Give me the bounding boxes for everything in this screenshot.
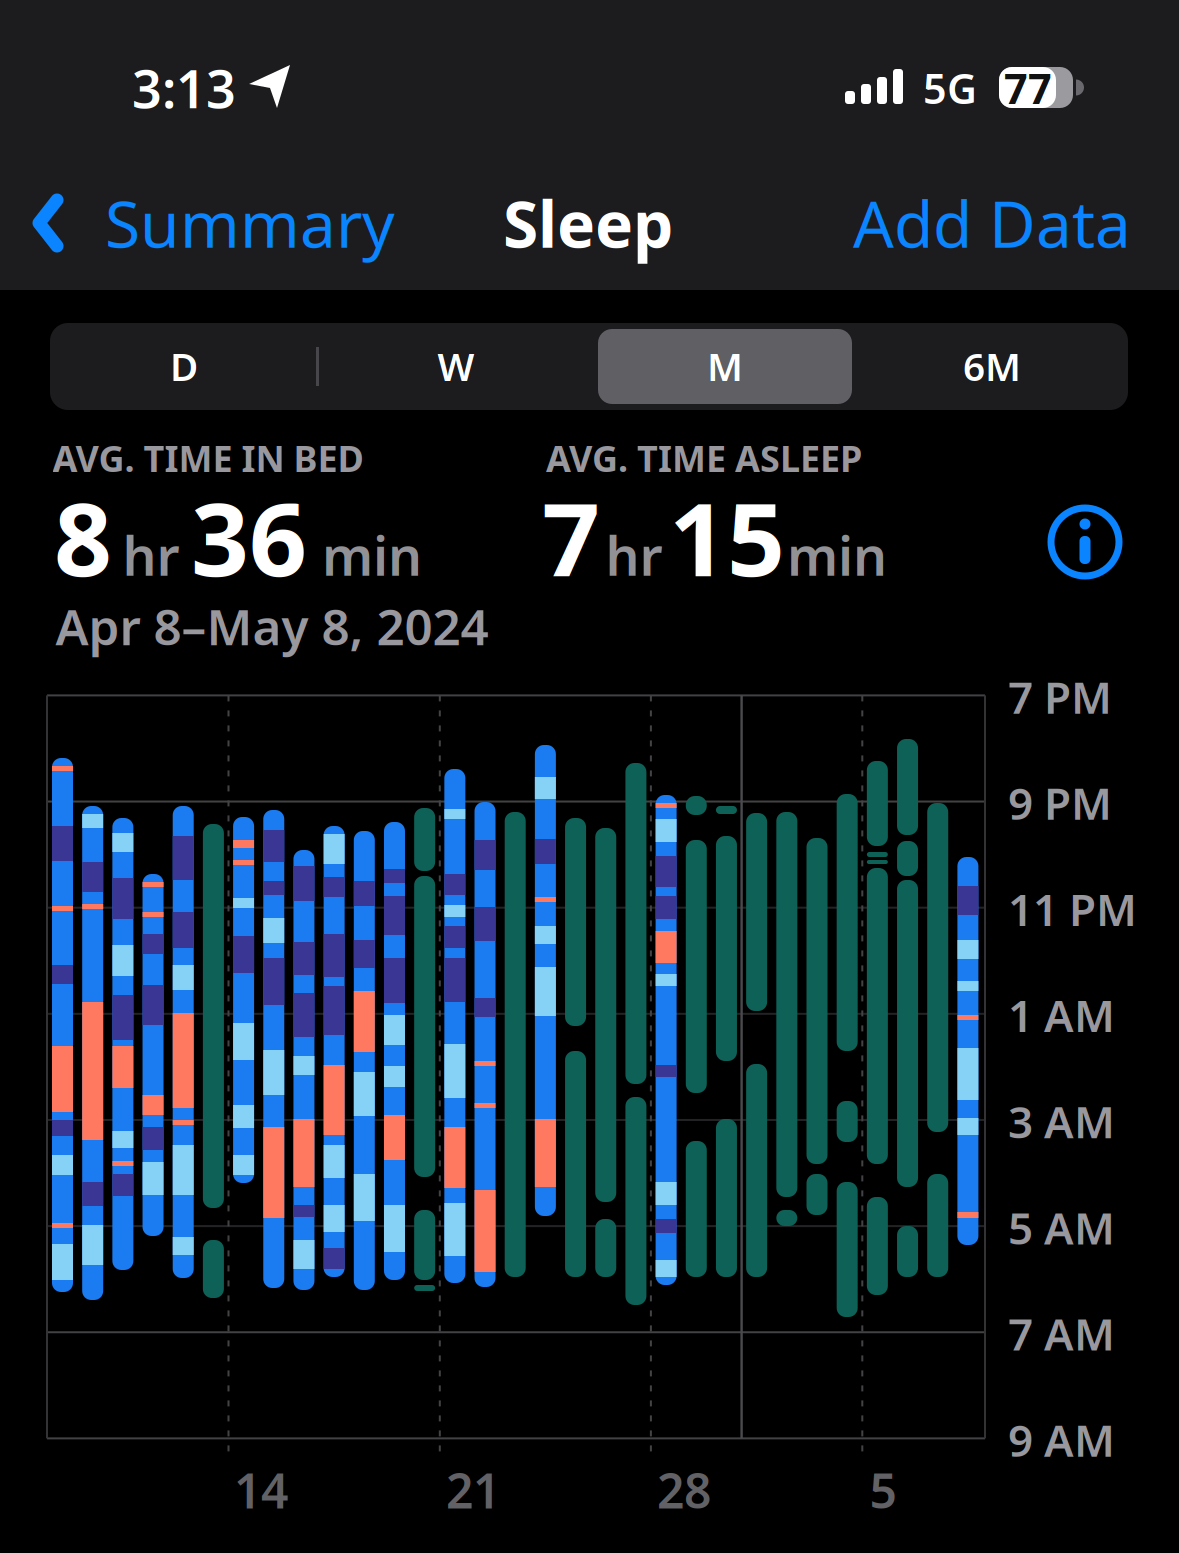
staticText: 9 PM (1008, 773, 1112, 832)
button[interactable]: W (319, 325, 593, 406)
staticText: AVG. TIME IN BED (52, 434, 363, 482)
staticText: AVG. TIME ASLEEP (546, 434, 862, 482)
staticText: 21 (446, 1458, 500, 1522)
staticText: 5 AM (1008, 1198, 1115, 1256)
staticText: hr (605, 520, 662, 590)
staticText: 7 PM (1008, 667, 1112, 726)
button[interactable]: Add Data (853, 180, 1131, 265)
staticText: 9 AM (1008, 1410, 1115, 1469)
button[interactable]: Summary (31, 180, 395, 265)
staticText: 3 AM (1008, 1092, 1115, 1150)
staticText: 8 (54, 470, 112, 604)
staticText: 77 (1004, 61, 1052, 115)
staticText: 14 (234, 1458, 288, 1522)
staticText: 3:13 (132, 53, 236, 123)
staticText: 36 (191, 470, 307, 604)
staticText: 7 AM (1008, 1304, 1115, 1363)
staticText: Sleep (503, 180, 673, 265)
staticText: 11 PM (1008, 880, 1137, 938)
staticText: D (170, 340, 198, 392)
staticText: M (707, 340, 743, 392)
staticText: 15 (669, 470, 785, 604)
staticText: min (322, 520, 422, 590)
staticText: Summary (105, 180, 395, 265)
staticText: 28 (657, 1458, 711, 1522)
staticText: 5 (869, 1458, 896, 1522)
staticText: 7 (542, 470, 600, 604)
staticText: W (437, 340, 474, 392)
staticText: 5G (923, 61, 977, 115)
staticText: min (787, 520, 887, 590)
staticText: Add Data (853, 180, 1131, 265)
button[interactable]: M (598, 325, 852, 406)
button[interactable]: D (53, 325, 315, 406)
staticText: 1 AM (1008, 986, 1115, 1044)
staticText: 6M (963, 340, 1021, 392)
button[interactable]: 6M (857, 325, 1127, 406)
staticText: Apr 8–May 8, 2024 (55, 593, 488, 659)
button[interactable]: More info (1045, 502, 1125, 582)
staticText: hr (122, 520, 179, 590)
